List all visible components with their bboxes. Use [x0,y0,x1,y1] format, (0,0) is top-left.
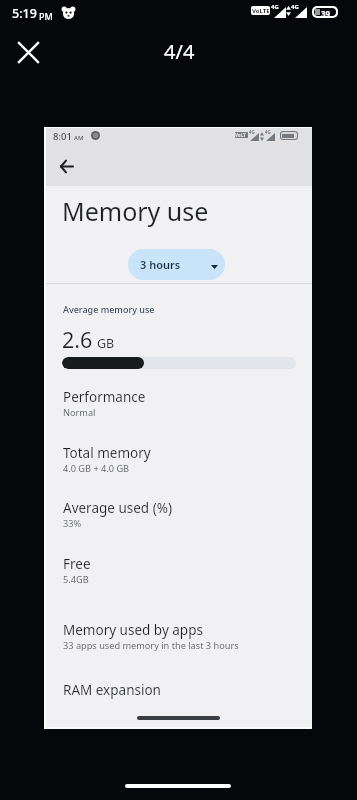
staticText: VoLTE [235,132,248,138]
staticText: 33% [63,517,82,530]
staticText: 2.6 [62,325,93,354]
button[interactable]: Free [44,555,312,586]
staticText: Normal [63,406,96,419]
staticText: Average memory use [63,303,155,315]
staticText: 4G [271,3,279,11]
staticText: 8:01 [53,130,72,143]
staticText: 5:19 [12,5,37,22]
staticText: 5.4GB [63,573,89,586]
staticText: 4.0 GB + 4.0 GB [63,462,130,475]
staticText: PM [39,10,53,22]
staticText: 4G [249,129,255,135]
staticText: 39 [321,8,331,16]
staticText: Memory use [62,194,209,228]
button[interactable]: Total memory [44,444,312,475]
staticText: Performance [63,388,146,406]
staticText: GB [97,335,115,352]
staticText: 3 hours [140,257,181,272]
staticText: VoLTE [252,7,270,15]
staticText: Memory used by apps [63,621,203,639]
staticText: 4/4 [164,38,195,65]
staticText: 33 apps used memory in the last 3 hours [63,639,239,652]
button[interactable]: Average used (%) [44,499,312,530]
button[interactable]: 3 hours [128,249,225,280]
staticText: Average used (%) [63,499,172,517]
button[interactable]: RAM expansion [44,681,312,699]
button[interactable]: Close [8,32,48,72]
button[interactable]: Performance [44,388,312,419]
staticText: 4G [291,3,299,11]
button[interactable]: Memory used by apps [44,621,312,652]
staticText: Free [63,555,91,573]
staticText: 4G [265,129,271,135]
button[interactable]: Back [54,154,78,178]
staticText: Total memory [63,444,151,462]
staticText: AM [74,134,84,142]
